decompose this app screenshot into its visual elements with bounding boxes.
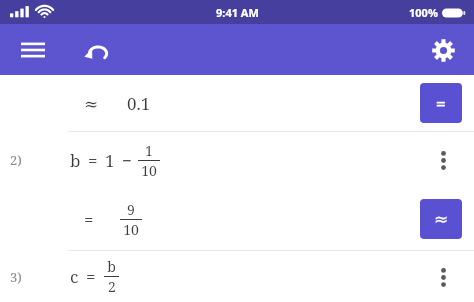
staticText: = (84, 208, 94, 231)
staticText: − (122, 149, 132, 172)
staticText: c (70, 265, 79, 288)
button[interactable]: Approximate (420, 199, 462, 239)
staticText: = (86, 265, 96, 288)
button[interactable]: Menu (10, 27, 56, 73)
staticText: = (436, 92, 446, 115)
staticText: ≈ (434, 209, 449, 229)
staticText: 2) (10, 151, 22, 169)
staticText: 100% (409, 5, 438, 20)
button[interactable]: More options (426, 257, 460, 297)
staticText: b (70, 149, 81, 172)
staticText: 10 (123, 220, 139, 239)
staticText: 3) (10, 268, 22, 286)
button[interactable]: Equals (420, 83, 462, 123)
staticText: 1 (145, 141, 153, 160)
button[interactable]: More options (426, 140, 460, 180)
staticText: b (107, 257, 116, 276)
staticText: 9 (127, 200, 135, 219)
button[interactable]: Undo (74, 27, 120, 73)
staticText: 9:41 AM (216, 5, 259, 20)
button[interactable]: Settings (420, 27, 466, 73)
staticText: ≈ (84, 94, 99, 114)
staticText: 2 (108, 277, 116, 296)
staticText: 1 (105, 149, 115, 172)
staticText: = (88, 149, 98, 172)
staticText: 10 (141, 161, 157, 180)
staticText: 0.1 (127, 92, 151, 115)
